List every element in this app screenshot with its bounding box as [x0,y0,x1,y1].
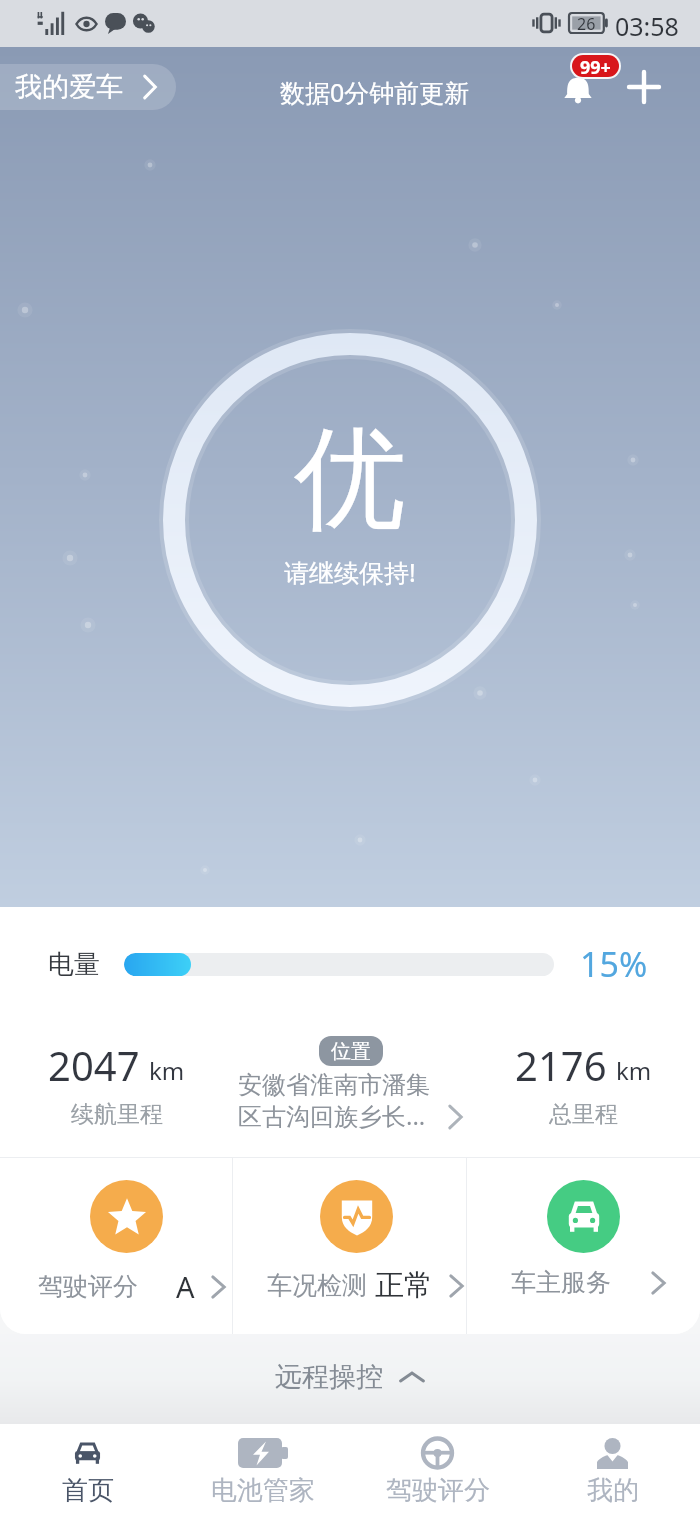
button[interactable]: 车主服务 [467,1157,700,1334]
staticText: 电池管家 [211,1474,315,1507]
button[interactable]: 位置 [238,1033,463,1132]
button[interactable]: 首页 [0,1424,175,1516]
staticText: 我的 [587,1474,639,1507]
staticText: 续航里程 [71,1100,163,1129]
staticText: 总里程 [549,1100,618,1129]
staticText: 数据0分钟前更新 [280,75,470,109]
button[interactable]: Notifications [549,49,611,119]
button[interactable]: 我的爱车 [0,64,176,110]
button[interactable]: 电池管家 [175,1424,350,1516]
staticText: 优 [294,409,406,550]
staticText: 位置 [331,1039,371,1064]
staticText: 26 [577,13,596,35]
button[interactable]: 驾驶评分 [0,1157,232,1334]
staticText: 我的爱车 [15,70,123,104]
button[interactable]: 驾驶评分 [350,1424,525,1516]
staticText: 03:58 [615,9,679,43]
staticText: 2047 [48,1038,140,1092]
button[interactable]: 远程操控 [0,1334,700,1424]
staticText: 首页 [62,1474,114,1507]
staticText: 请继续保持! [284,555,416,589]
staticText: 99+ [580,55,611,77]
staticText: 安徽省淮南市潘集 区古沟回族乡长... [238,1070,430,1132]
staticText: 2176 [515,1038,607,1092]
staticText: km [149,1054,185,1087]
staticText: A [176,1267,195,1306]
staticText: 驾驶评分 [386,1474,490,1507]
button[interactable]: Add [616,59,672,115]
staticText: 远程操控 [275,1360,383,1394]
button[interactable]: 我的 [525,1424,700,1516]
staticText: 驾驶评分 [38,1271,138,1302]
staticText: km [616,1054,652,1087]
staticText: 15% [580,941,648,987]
staticText: 车主服务 [511,1267,611,1298]
button[interactable]: 车况检测 [233,1157,466,1334]
staticText: 车况检测 [267,1270,367,1301]
staticText: 正常 [375,1267,433,1304]
staticText: 电量 [48,948,100,981]
